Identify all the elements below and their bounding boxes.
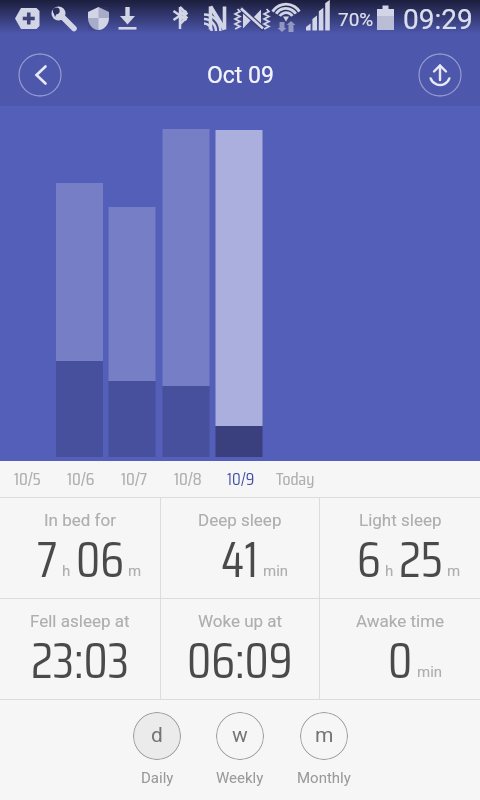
staticText: 09:29 bbox=[403, 3, 473, 36]
staticText: h bbox=[62, 562, 71, 580]
staticText: 06:09 bbox=[187, 621, 293, 700]
staticText: Weekly bbox=[216, 769, 264, 787]
button[interactable]: 10/5 bbox=[1, 461, 54, 497]
staticText: 7 bbox=[37, 520, 58, 599]
staticText: Monthly bbox=[297, 769, 351, 787]
staticText: 25 bbox=[399, 520, 443, 599]
staticText: Daily bbox=[141, 769, 174, 787]
staticText: Light sleep bbox=[359, 510, 442, 530]
button[interactable]: Deep sleep bbox=[161, 498, 319, 598]
staticText: min bbox=[195, 520, 221, 538]
staticText: h bbox=[385, 562, 394, 580]
button[interactable]: Light sleep bbox=[320, 498, 480, 598]
button[interactable]: Awake time bbox=[320, 599, 480, 699]
staticText: 06 bbox=[76, 520, 124, 599]
staticText: min bbox=[362, 621, 388, 639]
button[interactable]: 10/9 bbox=[214, 461, 267, 497]
staticText: 10/8 bbox=[174, 465, 202, 493]
staticText: Oct 09 bbox=[207, 62, 274, 89]
button[interactable]: m bbox=[283, 700, 365, 800]
staticText: 10/9 bbox=[227, 465, 255, 493]
staticText: w bbox=[232, 723, 248, 748]
button[interactable]: Fell asleep at bbox=[0, 599, 160, 699]
button[interactable]: In bed for bbox=[0, 498, 160, 598]
staticText: 10/7 bbox=[121, 465, 148, 493]
staticText: 10/6 bbox=[67, 465, 95, 493]
button[interactable]: 10/6 bbox=[54, 461, 107, 497]
button[interactable]: Today bbox=[269, 461, 322, 497]
staticText: 6 bbox=[357, 520, 381, 599]
staticText: min bbox=[263, 562, 289, 580]
staticText: 41 bbox=[221, 520, 259, 599]
staticText: m bbox=[315, 723, 334, 748]
staticText: Fell asleep at bbox=[30, 611, 130, 631]
staticText: 0 bbox=[388, 621, 413, 700]
staticText: 10/5 bbox=[14, 465, 41, 493]
staticText: m bbox=[128, 562, 142, 580]
button[interactable]: w bbox=[199, 700, 281, 800]
staticText: Today bbox=[276, 465, 315, 493]
button[interactable]: Share bbox=[418, 53, 462, 97]
button[interactable]: 10/7 bbox=[108, 461, 161, 497]
button[interactable]: Woke up at bbox=[161, 599, 319, 699]
staticText: min bbox=[417, 663, 443, 681]
button[interactable]: 10/8 bbox=[161, 461, 214, 497]
staticText: 23:03 bbox=[31, 621, 129, 700]
button[interactable]: Back bbox=[18, 53, 62, 97]
staticText: Woke up at bbox=[198, 611, 283, 631]
staticText: Awake time bbox=[356, 611, 445, 631]
staticText: d bbox=[151, 723, 163, 748]
staticText: m bbox=[447, 562, 461, 580]
staticText: In bed for bbox=[44, 510, 116, 530]
button[interactable]: d bbox=[116, 700, 198, 800]
staticText: Deep sleep bbox=[198, 510, 282, 530]
staticText: 70% bbox=[338, 8, 374, 30]
